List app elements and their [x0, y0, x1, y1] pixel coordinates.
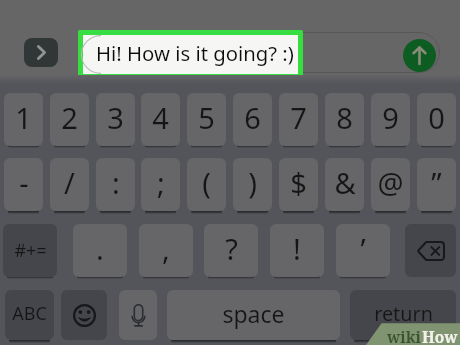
staticText: !: [293, 229, 301, 268]
staticText: (: [202, 163, 211, 202]
staticText: 1: [15, 98, 32, 137]
button[interactable]: .: [73, 224, 127, 277]
staticText: How: [422, 326, 458, 345]
button[interactable]: ABC: [5, 290, 54, 340]
staticText: 7: [290, 98, 307, 137]
button[interactable]: space: [167, 290, 340, 340]
button[interactable]: ,: [139, 224, 193, 277]
staticText: -: [19, 163, 29, 202]
staticText: .: [96, 229, 104, 268]
staticText: ’: [360, 229, 366, 268]
staticText: :: [112, 163, 120, 202]
staticText: #+=: [14, 238, 47, 263]
button[interactable]: (: [187, 158, 226, 211]
button[interactable]: Dictate: [119, 290, 157, 340]
staticText: ”: [431, 163, 442, 202]
staticText: 5: [198, 98, 215, 137]
button[interactable]: Emoji: [61, 290, 107, 340]
button[interactable]: !: [270, 224, 324, 277]
button[interactable]: 8: [325, 93, 364, 146]
button[interactable]: @: [371, 158, 410, 211]
staticText: wiki: [387, 326, 422, 345]
button[interactable]: ): [233, 158, 272, 211]
button[interactable]: 5: [187, 93, 226, 146]
staticText: ;: [157, 163, 165, 202]
button[interactable]: 9: [371, 93, 410, 146]
button[interactable]: &: [325, 158, 364, 211]
button[interactable]: [84, 32, 440, 73]
button[interactable]: return: [350, 290, 456, 340]
button[interactable]: Send: [403, 39, 436, 72]
staticText: 9: [382, 98, 399, 137]
staticText: ,: [162, 229, 170, 268]
staticText: 3: [107, 98, 124, 137]
button[interactable]: 0: [417, 93, 456, 146]
staticText: space: [222, 298, 285, 329]
button[interactable]: ”: [417, 158, 456, 211]
staticText: ?: [225, 229, 238, 268]
staticText: 8: [336, 98, 353, 137]
staticText: 4: [152, 98, 169, 137]
staticText: $: [290, 163, 307, 202]
staticText: @: [377, 163, 404, 202]
button[interactable]: $: [279, 158, 318, 211]
button[interactable]: Delete: [405, 224, 456, 277]
button[interactable]: /: [50, 158, 89, 211]
staticText: ): [248, 163, 257, 202]
button[interactable]: Expand: [24, 38, 58, 67]
button[interactable]: 7: [279, 93, 318, 146]
button[interactable]: 4: [141, 93, 180, 146]
button[interactable]: 6: [233, 93, 272, 146]
staticText: Hi! How is it going? :): [96, 39, 294, 67]
button[interactable]: :: [96, 158, 135, 211]
staticText: return: [374, 300, 433, 327]
button[interactable]: -: [4, 158, 43, 211]
button[interactable]: 1: [4, 93, 43, 146]
button[interactable]: ’: [336, 224, 390, 277]
button[interactable]: 2: [50, 93, 89, 146]
button[interactable]: ?: [204, 224, 258, 277]
staticText: 0: [428, 98, 445, 137]
staticText: 2: [61, 98, 78, 137]
button[interactable]: ;: [141, 158, 180, 211]
staticText: /: [64, 163, 75, 202]
staticText: 6: [244, 98, 261, 137]
button[interactable]: #+=: [3, 224, 57, 277]
button[interactable]: 3: [96, 93, 135, 146]
staticText: ABC: [12, 301, 47, 326]
staticText: &: [334, 163, 356, 202]
